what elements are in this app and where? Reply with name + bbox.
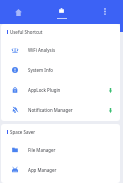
staticText: Useful Shortcut (10, 29, 43, 35)
staticText: App Manager (28, 167, 57, 173)
button[interactable]: Notification Manager (1, 100, 120, 120)
button[interactable]: System Info (1, 60, 120, 80)
button[interactable]: AppLock Plugin (1, 80, 120, 100)
staticText: Notification Manager (28, 107, 73, 113)
button[interactable]: Home (0, 0, 37, 24)
staticText: WiFi Analysis (28, 47, 56, 53)
staticText: Space Saver (10, 129, 36, 135)
button[interactable]: WiFi Analysis (1, 40, 120, 60)
button[interactable]: More options (86, 0, 123, 24)
button[interactable]: App Manager (1, 160, 120, 180)
staticText: File Manager (28, 147, 56, 153)
staticText: System Info (28, 67, 53, 73)
staticText: AppLock Plugin (28, 87, 61, 93)
button[interactable]: Tools (37, 0, 86, 24)
button[interactable]: File Manager (1, 140, 120, 160)
